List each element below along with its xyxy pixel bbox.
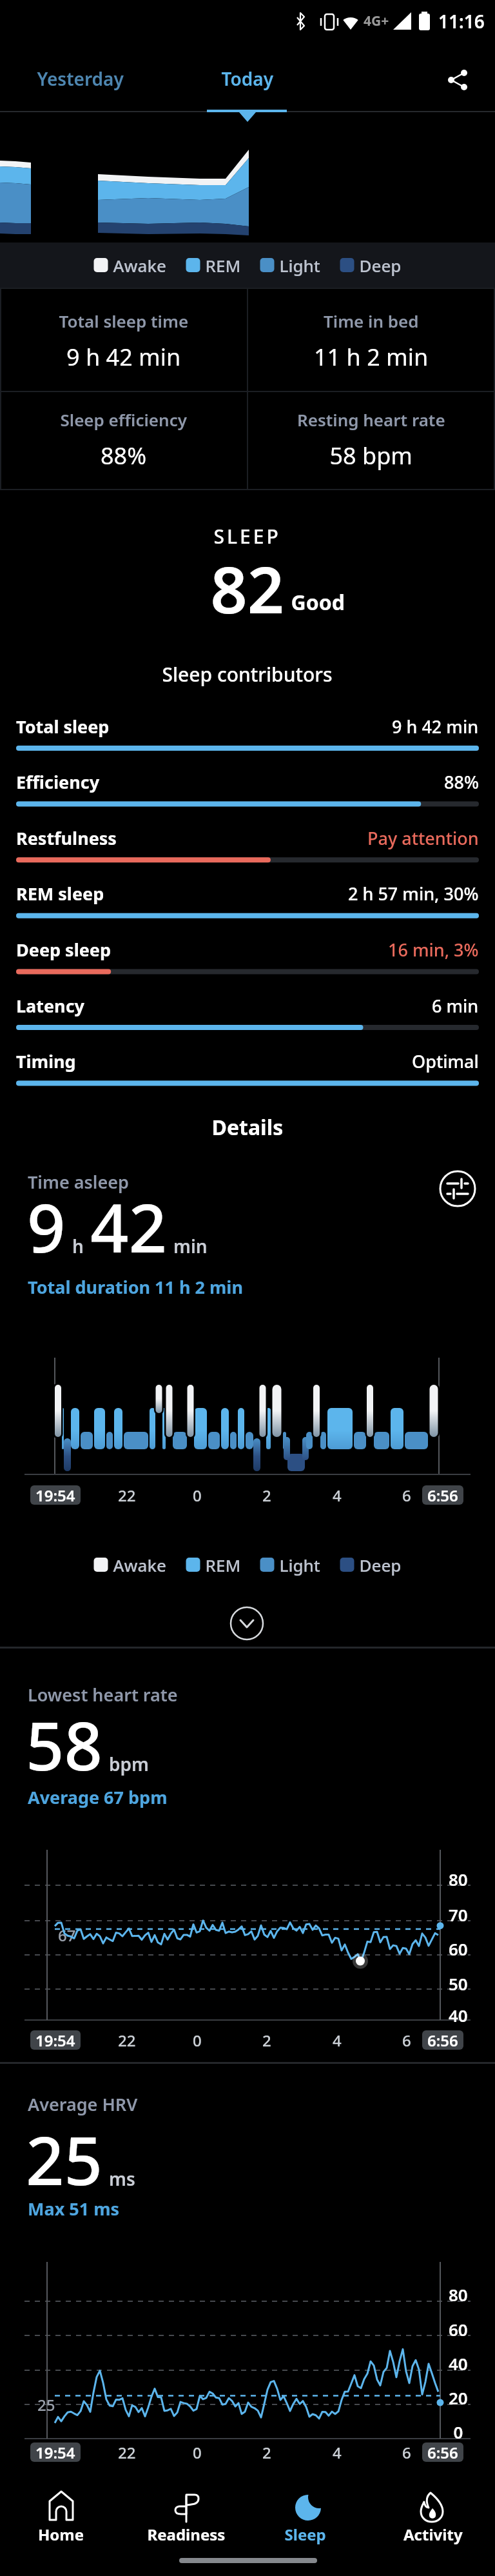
button[interactable] (437, 59, 480, 99)
button[interactable] (436, 1167, 480, 1211)
button[interactable] (391, 2477, 475, 2548)
button[interactable] (144, 2477, 228, 2548)
button[interactable] (39, 55, 122, 101)
button[interactable] (227, 1603, 268, 1645)
button[interactable] (205, 55, 290, 101)
button[interactable] (19, 2477, 103, 2548)
button[interactable] (264, 2477, 347, 2548)
